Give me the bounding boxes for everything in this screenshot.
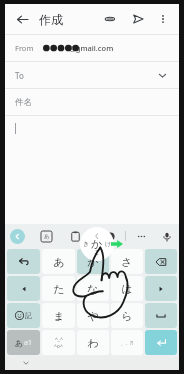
staticText: 件名: [15, 97, 32, 108]
button[interactable]: Attach file: [99, 8, 121, 30]
staticText: な: [87, 282, 99, 296]
button[interactable]: Voice input: [159, 229, 174, 244]
button[interactable]: は: [111, 276, 143, 301]
staticText: は: [121, 282, 133, 296]
staticText: 、。?!: [121, 340, 134, 346]
button[interactable]: From: [5, 35, 179, 61]
staticText: ^_^: [55, 336, 63, 343]
button[interactable]: Close toolbar: [10, 229, 25, 244]
button[interactable]: か: [77, 249, 109, 274]
button[interactable]: right: [145, 276, 177, 301]
button[interactable]: More: [134, 229, 149, 244]
staticText: あ: [44, 233, 50, 240]
staticText: く: [94, 232, 101, 240]
button[interactable]: kao: [42, 330, 75, 355]
staticText: か: [87, 255, 99, 269]
staticText: た: [53, 282, 65, 296]
staticText: @gmail.com: [69, 43, 114, 53]
button[interactable]: enter: [145, 330, 177, 355]
staticText: ^o^: [54, 343, 63, 350]
button[interactable]: emoji: [7, 303, 40, 328]
button[interactable]: left: [7, 276, 40, 301]
button[interactable]: 件名: [5, 89, 179, 115]
button[interactable]: ら: [111, 303, 143, 328]
button[interactable]: back: [145, 249, 177, 274]
staticText: To: [15, 70, 24, 81]
staticText: さ: [121, 255, 133, 269]
button[interactable]: punct: [111, 330, 143, 355]
button[interactable]: Sticker: [104, 230, 117, 243]
button[interactable]: Expand recipients: [155, 68, 169, 82]
button[interactable]: Back: [21, 358, 31, 368]
staticText: a1: [24, 338, 32, 348]
button[interactable]: undo: [7, 249, 40, 274]
staticText: わ: [87, 336, 99, 350]
button[interactable]: わ: [77, 330, 109, 355]
button[interactable]: mode: [7, 330, 40, 355]
staticText: 記: [25, 311, 32, 320]
button[interactable]: Send: [127, 8, 149, 30]
button[interactable]: な: [77, 276, 109, 301]
staticText: こ: [94, 248, 101, 256]
button[interactable]: Translate: [38, 228, 54, 244]
button[interactable]: Clipboard: [67, 228, 83, 244]
button[interactable]: [5, 116, 179, 140]
button[interactable]: To: [5, 62, 179, 88]
staticText: か: [91, 237, 103, 251]
staticText: 作成: [39, 12, 63, 27]
staticText: ま: [53, 309, 65, 323]
button[interactable]: あ: [42, 249, 75, 274]
button[interactable]: た: [42, 276, 75, 301]
staticText: あ: [53, 255, 65, 269]
button[interactable]: さ: [111, 249, 143, 274]
button[interactable]: space: [145, 303, 177, 328]
button[interactable]: や: [77, 303, 109, 328]
button[interactable]: More options: [153, 9, 173, 29]
staticText: け: [105, 240, 112, 248]
button[interactable]: ま: [42, 303, 75, 328]
button[interactable]: Back: [11, 8, 33, 30]
staticText: From: [15, 43, 34, 53]
staticText: あ: [15, 338, 24, 348]
staticText: き: [83, 240, 90, 248]
staticText: や: [87, 309, 99, 323]
staticText: ら: [121, 309, 133, 323]
